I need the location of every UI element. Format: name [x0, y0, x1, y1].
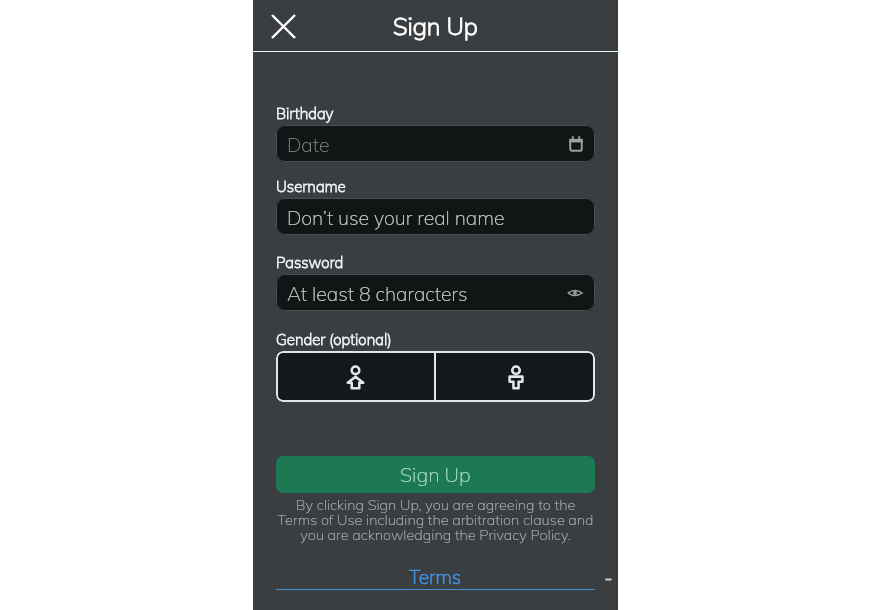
staticText: Gender (optional) [276, 330, 392, 349]
staticText: Username [276, 177, 346, 196]
button[interactable]: Date [276, 125, 595, 162]
staticText: Don’t use your real name [287, 205, 505, 229]
staticText: Birthday [276, 104, 334, 123]
staticText: Date [287, 132, 330, 156]
button[interactable]: Female [276, 351, 434, 402]
button[interactable]: Terms [276, 565, 595, 590]
staticText: Terms [409, 565, 462, 589]
button[interactable]: Sign Up [276, 456, 595, 493]
other: Pick date [568, 136, 584, 152]
button[interactable]: At least 8 characters [276, 274, 595, 311]
staticText: Sign Up [393, 11, 478, 41]
button[interactable]: Don’t use your real name [276, 198, 595, 235]
staticText: At least 8 characters [287, 281, 468, 305]
staticText: Password [276, 253, 344, 272]
other: Show password [566, 284, 584, 302]
staticText: Sign Up [400, 462, 471, 487]
button[interactable]: Close [265, 8, 301, 44]
button[interactable]: Male [436, 351, 595, 402]
staticText: By clicking Sign Up, you are agreeing to… [276, 495, 595, 544]
